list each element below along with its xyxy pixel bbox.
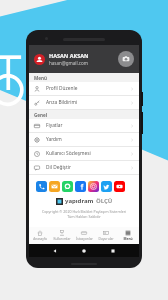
- staticText: Tüm Hakları Saklıdır: [29, 214, 139, 219]
- button[interactable]: Mail: [49, 181, 60, 192]
- staticText: Menü: [34, 75, 48, 81]
- staticText: hasan@gmail.com: [49, 60, 88, 66]
- button[interactable]: Yardım: [29, 133, 139, 146]
- button[interactable]: Instagram: [88, 181, 99, 192]
- staticText: Copyright © 2020 Hızlı Bisiklet Paylaşım…: [29, 209, 139, 214]
- other: Back: [52, 248, 58, 254]
- button[interactable]: HASAN AKSAN: [29, 45, 139, 73]
- staticText: Yardım: [46, 136, 130, 143]
- button[interactable]: Call: [36, 181, 47, 192]
- button[interactable]: Fiyatlar: [29, 119, 139, 132]
- button[interactable]: Kullanımlar: [51, 227, 73, 244]
- staticText: ÖLÇÜ: [96, 197, 113, 205]
- staticText: Anasayfa: [33, 237, 47, 241]
- button[interactable]: YouTube: [114, 181, 125, 192]
- button[interactable]: Twitter: [101, 181, 112, 192]
- button[interactable]: Menü: [117, 227, 139, 244]
- button[interactable]: Dil Değiştir: [29, 161, 139, 174]
- staticText: Genel: [34, 112, 48, 118]
- button[interactable]: Duyurular: [95, 227, 117, 244]
- button[interactable]: Facebook: [75, 181, 86, 192]
- button[interactable]: Anasayfa: [29, 227, 51, 244]
- button[interactable]: Change photo: [118, 51, 134, 67]
- staticText: Kullanımlar: [53, 237, 71, 241]
- other: Home: [81, 248, 87, 254]
- staticText: Kullanıcı Sözleşmesi: [46, 150, 130, 157]
- staticText: Menü: [123, 237, 133, 241]
- staticText: Profil Düzenle: [46, 85, 130, 92]
- button[interactable]: WhatsApp: [62, 181, 73, 192]
- staticText: yapıdram: [65, 197, 94, 205]
- staticText: Fiyatlar: [46, 122, 130, 129]
- button[interactable]: İstasyonlar: [73, 227, 95, 244]
- button[interactable]: Kullanıcı Sözleşmesi: [29, 147, 139, 160]
- staticText: Arıza Bildirimi: [46, 99, 130, 106]
- staticText: HASAN AKSAN: [49, 52, 89, 59]
- button[interactable]: Arıza Bildirimi: [29, 96, 139, 109]
- staticText: Dil Değiştir: [46, 164, 130, 171]
- staticText: Duyurular: [98, 237, 114, 241]
- other: Recents: [110, 248, 116, 254]
- button[interactable]: Profil Düzenle: [29, 82, 139, 95]
- staticText: İstasyonlar: [76, 237, 93, 241]
